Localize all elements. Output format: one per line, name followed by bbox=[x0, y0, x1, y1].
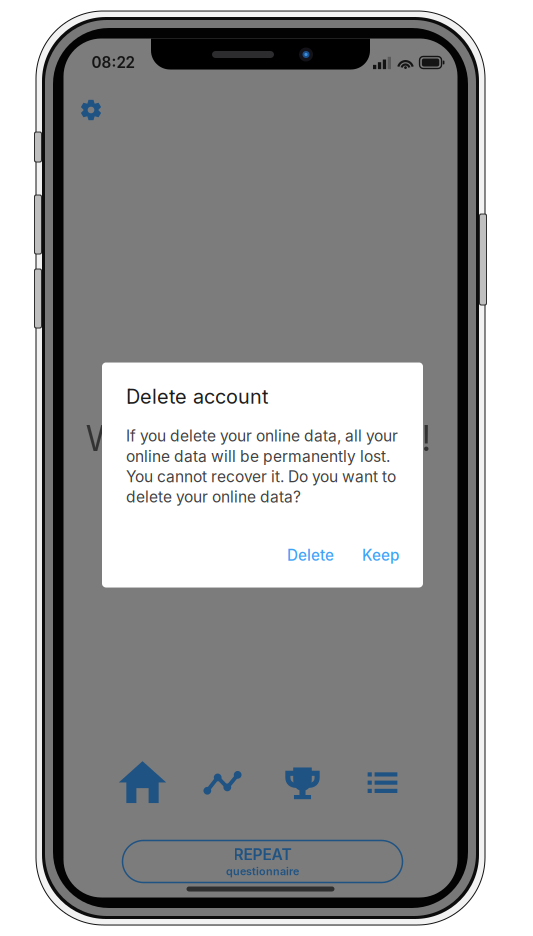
staticText: delete your online data? bbox=[126, 487, 301, 506]
staticText: questionnaire bbox=[226, 865, 299, 878]
staticText: If you delete your online data, all your bbox=[126, 426, 398, 445]
button[interactable]: Questionnaires bbox=[342, 756, 422, 806]
button[interactable]: REPEAT bbox=[122, 840, 402, 882]
staticText: online data will be permanently lost. bbox=[126, 447, 390, 466]
button[interactable]: Delete bbox=[277, 539, 344, 571]
button[interactable]: Keep bbox=[352, 539, 409, 571]
staticText: REPEAT bbox=[233, 845, 291, 864]
staticText: You cannot recover it. Do you want to bbox=[126, 467, 396, 486]
button[interactable]: Settings bbox=[71, 90, 110, 129]
staticText: 08:22 bbox=[91, 53, 134, 72]
staticText: Keep bbox=[362, 546, 399, 564]
button[interactable]: Home bbox=[102, 756, 182, 806]
staticText: Delete bbox=[287, 546, 334, 564]
button[interactable]: Achievements bbox=[262, 756, 342, 806]
button[interactable]: Statistics bbox=[182, 756, 262, 806]
staticText: Delete account bbox=[126, 384, 268, 408]
staticText: Welcome back, Anna! bbox=[86, 416, 431, 459]
